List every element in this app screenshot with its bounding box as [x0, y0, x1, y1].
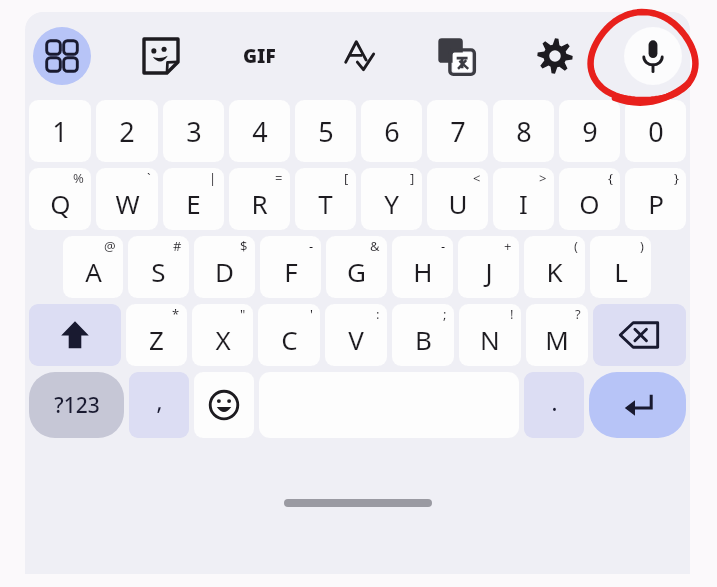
button[interactable]: & [326, 236, 387, 298]
button[interactable]: " [192, 304, 253, 366]
button[interactable]: 0 [625, 100, 686, 162]
button[interactable]: : [325, 304, 387, 366]
staticText: & [370, 237, 380, 255]
staticText: O [579, 186, 600, 221]
button[interactable]: @ [63, 236, 123, 298]
button[interactable]: | [163, 168, 224, 230]
button[interactable]: Backspace [593, 304, 686, 366]
button[interactable]: + [458, 236, 519, 298]
staticText: 9 [582, 113, 598, 150]
button[interactable]: ) [590, 236, 651, 298]
button[interactable]: , [129, 372, 189, 438]
button[interactable]: ?123 [29, 372, 124, 438]
staticText: 8 [516, 113, 532, 150]
staticText: P [648, 186, 664, 221]
staticText: 5 [318, 113, 334, 150]
button[interactable]: # [128, 236, 189, 298]
staticText: GIF [243, 43, 276, 69]
button[interactable]: 9 [559, 100, 620, 162]
button[interactable]: 4 [229, 100, 290, 162]
staticText: L [614, 254, 628, 289]
button[interactable]: % [29, 168, 91, 230]
button[interactable]: } [625, 168, 686, 230]
button[interactable]: 1 [29, 100, 91, 162]
button[interactable]: 7 [427, 100, 488, 162]
staticText: ' [310, 305, 313, 323]
button[interactable]: $ [194, 236, 255, 298]
staticText: ?123 [54, 391, 100, 420]
button[interactable]: Spell check [329, 27, 387, 85]
button[interactable]: 5 [295, 100, 356, 162]
staticText: ) [640, 237, 644, 255]
button[interactable]: GIF [230, 27, 288, 85]
staticText: > [539, 169, 547, 187]
staticText: - [441, 237, 446, 255]
button[interactable]: 3 [163, 100, 224, 162]
staticText: 6 [384, 113, 400, 150]
button[interactable]: 6 [361, 100, 422, 162]
staticText: 0 [648, 113, 664, 150]
button[interactable]: Apps [33, 27, 91, 85]
button[interactable]: { [559, 168, 620, 230]
staticText: ] [410, 169, 415, 187]
button[interactable]: < [427, 168, 488, 230]
button[interactable]: > [493, 168, 554, 230]
staticText: 7 [450, 113, 466, 150]
button[interactable]: Translate [427, 27, 485, 85]
staticText: 1 [52, 113, 68, 150]
staticText: K [546, 254, 563, 289]
staticText: } [674, 169, 679, 187]
button[interactable]: Stickers [132, 27, 190, 85]
button[interactable]: ( [524, 236, 585, 298]
button[interactable]: ! [459, 304, 521, 366]
staticText: 2 [119, 113, 135, 150]
staticText: 3 [186, 113, 202, 150]
staticText: . [551, 385, 558, 418]
staticText: V [348, 322, 364, 357]
button[interactable]: ' [258, 304, 320, 366]
button[interactable]: * [126, 304, 187, 366]
button[interactable]: [ [295, 168, 356, 230]
button[interactable]: ; [392, 304, 454, 366]
staticText: M [545, 322, 569, 357]
staticText: Y [384, 186, 399, 221]
staticText: H [413, 254, 433, 289]
staticText: < [473, 169, 481, 187]
staticText: D [215, 254, 234, 289]
staticText: U [448, 186, 468, 221]
button[interactable]: ` [96, 168, 158, 230]
button[interactable]: 8 [493, 100, 554, 162]
button[interactable]: Settings [526, 27, 584, 85]
staticText: : [376, 305, 380, 323]
button[interactable]: Voice input [624, 27, 682, 85]
staticText: X [215, 322, 231, 357]
staticText: ` [147, 169, 151, 187]
button[interactable]: - [260, 236, 321, 298]
button[interactable]: Emoji [194, 372, 254, 438]
button[interactable]: Shift [29, 304, 121, 366]
staticText: C [281, 322, 298, 357]
staticText: G [347, 254, 366, 289]
staticText: | [209, 169, 217, 187]
staticText: ? [575, 305, 581, 323]
staticText: [ [344, 169, 349, 187]
staticText: B [415, 322, 432, 357]
staticText: F [284, 254, 298, 289]
staticText: I [519, 186, 528, 221]
staticText: Z [149, 322, 164, 357]
button[interactable]: ] [361, 168, 422, 230]
staticText: ! [510, 305, 514, 323]
button[interactable]: Enter [589, 372, 686, 438]
staticText: " [240, 305, 246, 323]
staticText: - [309, 237, 314, 255]
button[interactable]: = [229, 168, 290, 230]
staticText: W [115, 186, 140, 221]
staticText: R [251, 186, 268, 221]
staticText: % [73, 169, 84, 187]
button[interactable]: - [392, 236, 453, 298]
button[interactable]: 2 [96, 100, 158, 162]
staticText: N [480, 322, 500, 357]
button[interactable]: ? [526, 304, 588, 366]
button[interactable]: . [524, 372, 584, 438]
